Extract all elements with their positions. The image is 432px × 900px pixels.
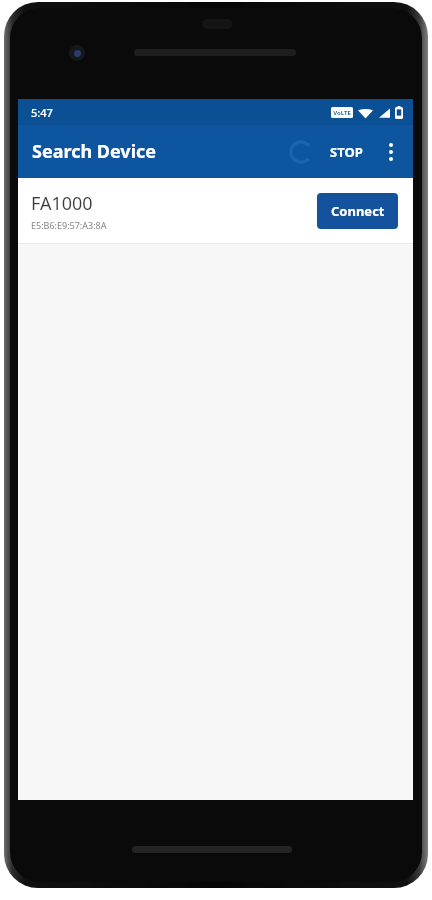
staticText: 5:47 bbox=[31, 105, 53, 120]
button[interactable]: More options bbox=[374, 135, 408, 169]
staticText: FA1000 bbox=[31, 191, 93, 216]
staticText: STOP bbox=[330, 143, 363, 161]
button[interactable]: Connect bbox=[317, 193, 398, 229]
staticText: Search Device bbox=[32, 139, 157, 164]
button[interactable]: FA1000 bbox=[18, 178, 413, 243]
staticText: E5:B6:E9:57:A3:8A bbox=[31, 219, 107, 231]
staticText: Connect bbox=[331, 202, 385, 220]
button[interactable]: STOP bbox=[322, 137, 371, 167]
staticText: VoLTE bbox=[333, 109, 351, 117]
